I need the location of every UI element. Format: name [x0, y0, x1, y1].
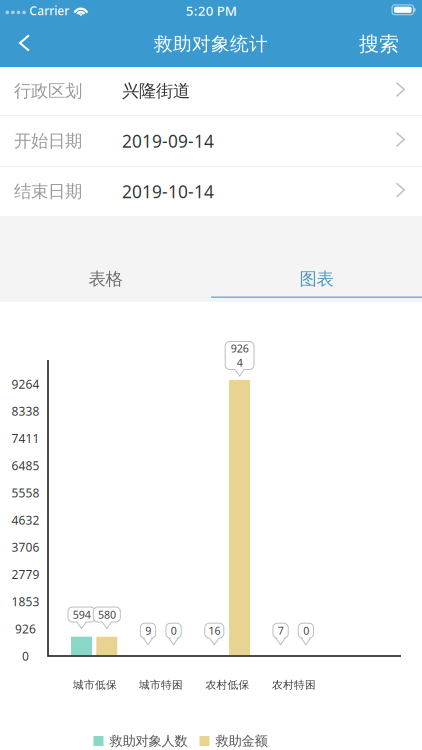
staticText: 580	[98, 607, 116, 622]
button[interactable]: Back	[0, 24, 44, 64]
staticText: 救助对象人数	[109, 733, 187, 749]
staticText: 8338	[11, 403, 39, 419]
staticText: 9	[145, 624, 151, 638]
button[interactable]: 图表	[211, 256, 422, 302]
staticText: 0	[303, 624, 309, 638]
staticText: 7	[278, 624, 284, 638]
staticText: 农村低保	[205, 678, 249, 691]
staticText: 16	[208, 624, 220, 638]
staticText: Carrier	[29, 3, 69, 19]
staticText: 城市特困	[139, 678, 183, 691]
staticText: 0	[22, 648, 29, 664]
staticText: 0	[171, 624, 177, 638]
staticText: 7411	[11, 430, 39, 446]
staticText: 5:20 PM	[186, 2, 237, 19]
button[interactable]: 结束日期	[0, 167, 422, 216]
staticText: 农村特困	[272, 678, 316, 691]
staticText: 开始日期	[14, 130, 82, 152]
staticText: 5558	[11, 485, 39, 501]
staticText: 兴隆街道	[122, 80, 190, 102]
staticText: 3706	[11, 539, 39, 555]
staticText: 救助金额	[215, 733, 267, 749]
staticText: 2019-09-14	[122, 129, 214, 152]
staticText: 4632	[11, 512, 39, 528]
staticText: 6485	[11, 458, 39, 473]
staticText: 594	[72, 607, 90, 622]
staticText: 926 4	[231, 341, 249, 370]
staticText: 图表	[299, 268, 333, 290]
button[interactable]: 行政区划	[0, 67, 422, 115]
staticText: 结束日期	[14, 181, 82, 202]
staticText: 2019-10-14	[122, 180, 214, 203]
staticText: 1853	[11, 594, 39, 609]
button[interactable]: 表格	[0, 256, 211, 302]
staticText: 2779	[11, 566, 39, 582]
staticText: 9264	[11, 376, 39, 392]
staticText: 表格	[88, 268, 122, 290]
staticText: 救助对象统计	[154, 32, 268, 55]
staticText: 行政区划	[14, 80, 82, 102]
staticText: 926	[15, 621, 36, 637]
staticText: 搜索	[359, 32, 399, 56]
button[interactable]: 开始日期	[0, 116, 422, 166]
staticText: 城市低保	[73, 678, 117, 691]
button[interactable]: 搜索	[345, 21, 422, 67]
